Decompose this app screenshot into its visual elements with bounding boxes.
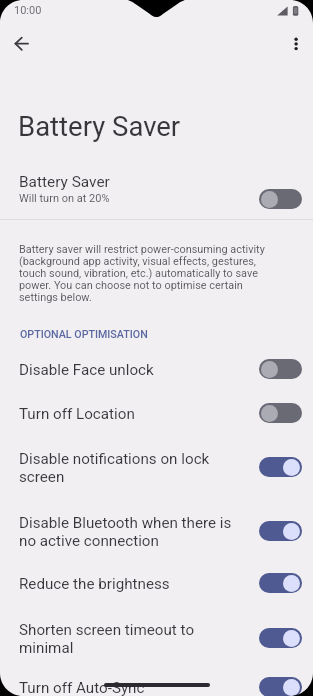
button[interactable]: Disable notifications on lock screen xyxy=(0,438,313,500)
staticText: Battery Saver xyxy=(18,109,181,143)
staticText: Disable Face unlock xyxy=(19,361,243,379)
staticText: Shorten screen timeout to minimal xyxy=(19,621,243,657)
button[interactable]: More options xyxy=(279,26,313,61)
button[interactable]: Toggle xyxy=(259,359,302,379)
staticText: Turn off Auto-Sync xyxy=(19,679,243,696)
button[interactable]: Toggle xyxy=(259,521,302,541)
staticText: Will turn on at 20% xyxy=(19,191,110,205)
button[interactable]: Shorten screen timeout to minimal xyxy=(0,609,313,671)
button[interactable]: Toggle xyxy=(259,677,302,696)
staticText: Disable Bluetooth when there is no activ… xyxy=(19,514,243,550)
staticText: 10:00 xyxy=(14,4,42,17)
button[interactable]: Disable Face unlock xyxy=(0,349,313,393)
staticText: Reduce the brightness xyxy=(19,575,243,593)
staticText: OPTIONAL OPTIMISATION xyxy=(20,328,148,341)
staticText: Battery saver will restrict power-consum… xyxy=(19,243,269,303)
other: Status icons xyxy=(0,0,313,696)
button[interactable]: Toggle xyxy=(259,573,302,593)
button[interactable]: Turn off Location xyxy=(0,393,313,437)
button[interactable]: Toggle xyxy=(259,628,302,648)
staticText: Battery Saver xyxy=(19,173,110,191)
staticText: Turn off Location xyxy=(19,405,243,423)
button[interactable]: Turn off Auto-Sync xyxy=(0,667,313,696)
button[interactable]: Navigate up xyxy=(4,26,39,61)
button[interactable]: Toggle xyxy=(259,403,302,423)
button[interactable]: Reduce the brightness xyxy=(0,563,313,607)
staticText: Disable notifications on lock screen xyxy=(19,450,243,486)
button[interactable]: Toggle xyxy=(259,457,302,477)
button[interactable]: Disable Bluetooth when there is no activ… xyxy=(0,502,313,564)
button[interactable]: Battery Saver xyxy=(0,163,313,211)
button[interactable]: Toggle xyxy=(259,189,302,209)
